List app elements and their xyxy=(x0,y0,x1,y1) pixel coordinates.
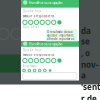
staticText: Quiz de hoje xyxy=(23,9,42,13)
staticText: Marque a resposta certa xyxy=(23,53,54,56)
staticText: O resultado da sua aposta é importante, … xyxy=(47,30,75,44)
staticText: Quiz de hoje xyxy=(23,48,42,52)
staticText: Escolha sua opção xyxy=(29,41,62,46)
staticText: Escolha sua opção xyxy=(29,0,62,5)
staticText: Hoje 09:41 xyxy=(23,25,40,29)
staticText: nova xyxy=(81,59,99,81)
staticText: 'sent xyxy=(81,82,100,92)
staticText: r de xyxy=(81,93,97,100)
staticText: Marque a resposta certa xyxy=(23,14,54,18)
staticText: Resultado xyxy=(23,64,37,68)
staticText: da se xyxy=(81,25,91,47)
staticText: , o xyxy=(81,48,90,58)
